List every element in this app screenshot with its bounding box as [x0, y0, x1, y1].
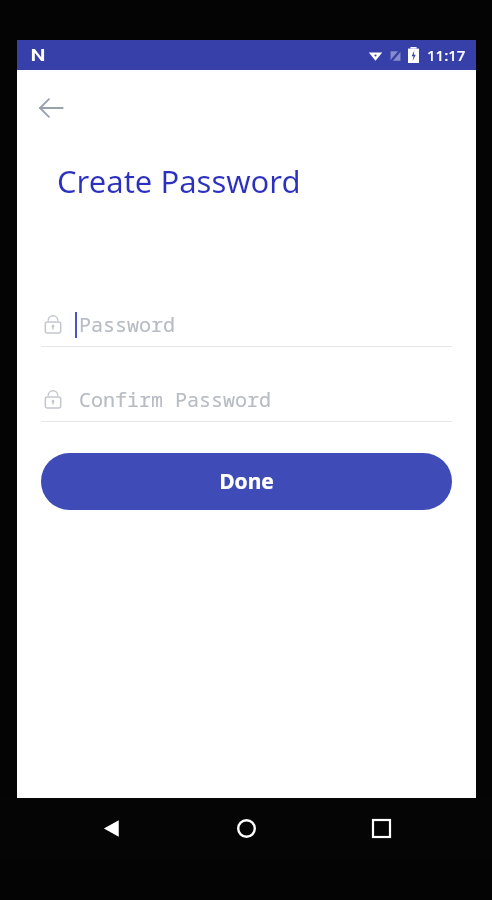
staticText: Confirm Password [79, 386, 271, 413]
button[interactable]: Back [29, 86, 73, 130]
button[interactable]: Confirm Password [41, 377, 452, 422]
button[interactable]: Done [41, 453, 452, 510]
staticText: Done [219, 467, 274, 496]
button[interactable]: Recent apps [357, 804, 405, 852]
staticText: 11:17 [427, 45, 466, 65]
button[interactable]: Home [222, 804, 270, 852]
staticText: Create Password [57, 160, 301, 202]
staticText: Password [79, 311, 175, 338]
button[interactable]: Password [41, 302, 452, 347]
button[interactable]: Back [87, 804, 135, 852]
